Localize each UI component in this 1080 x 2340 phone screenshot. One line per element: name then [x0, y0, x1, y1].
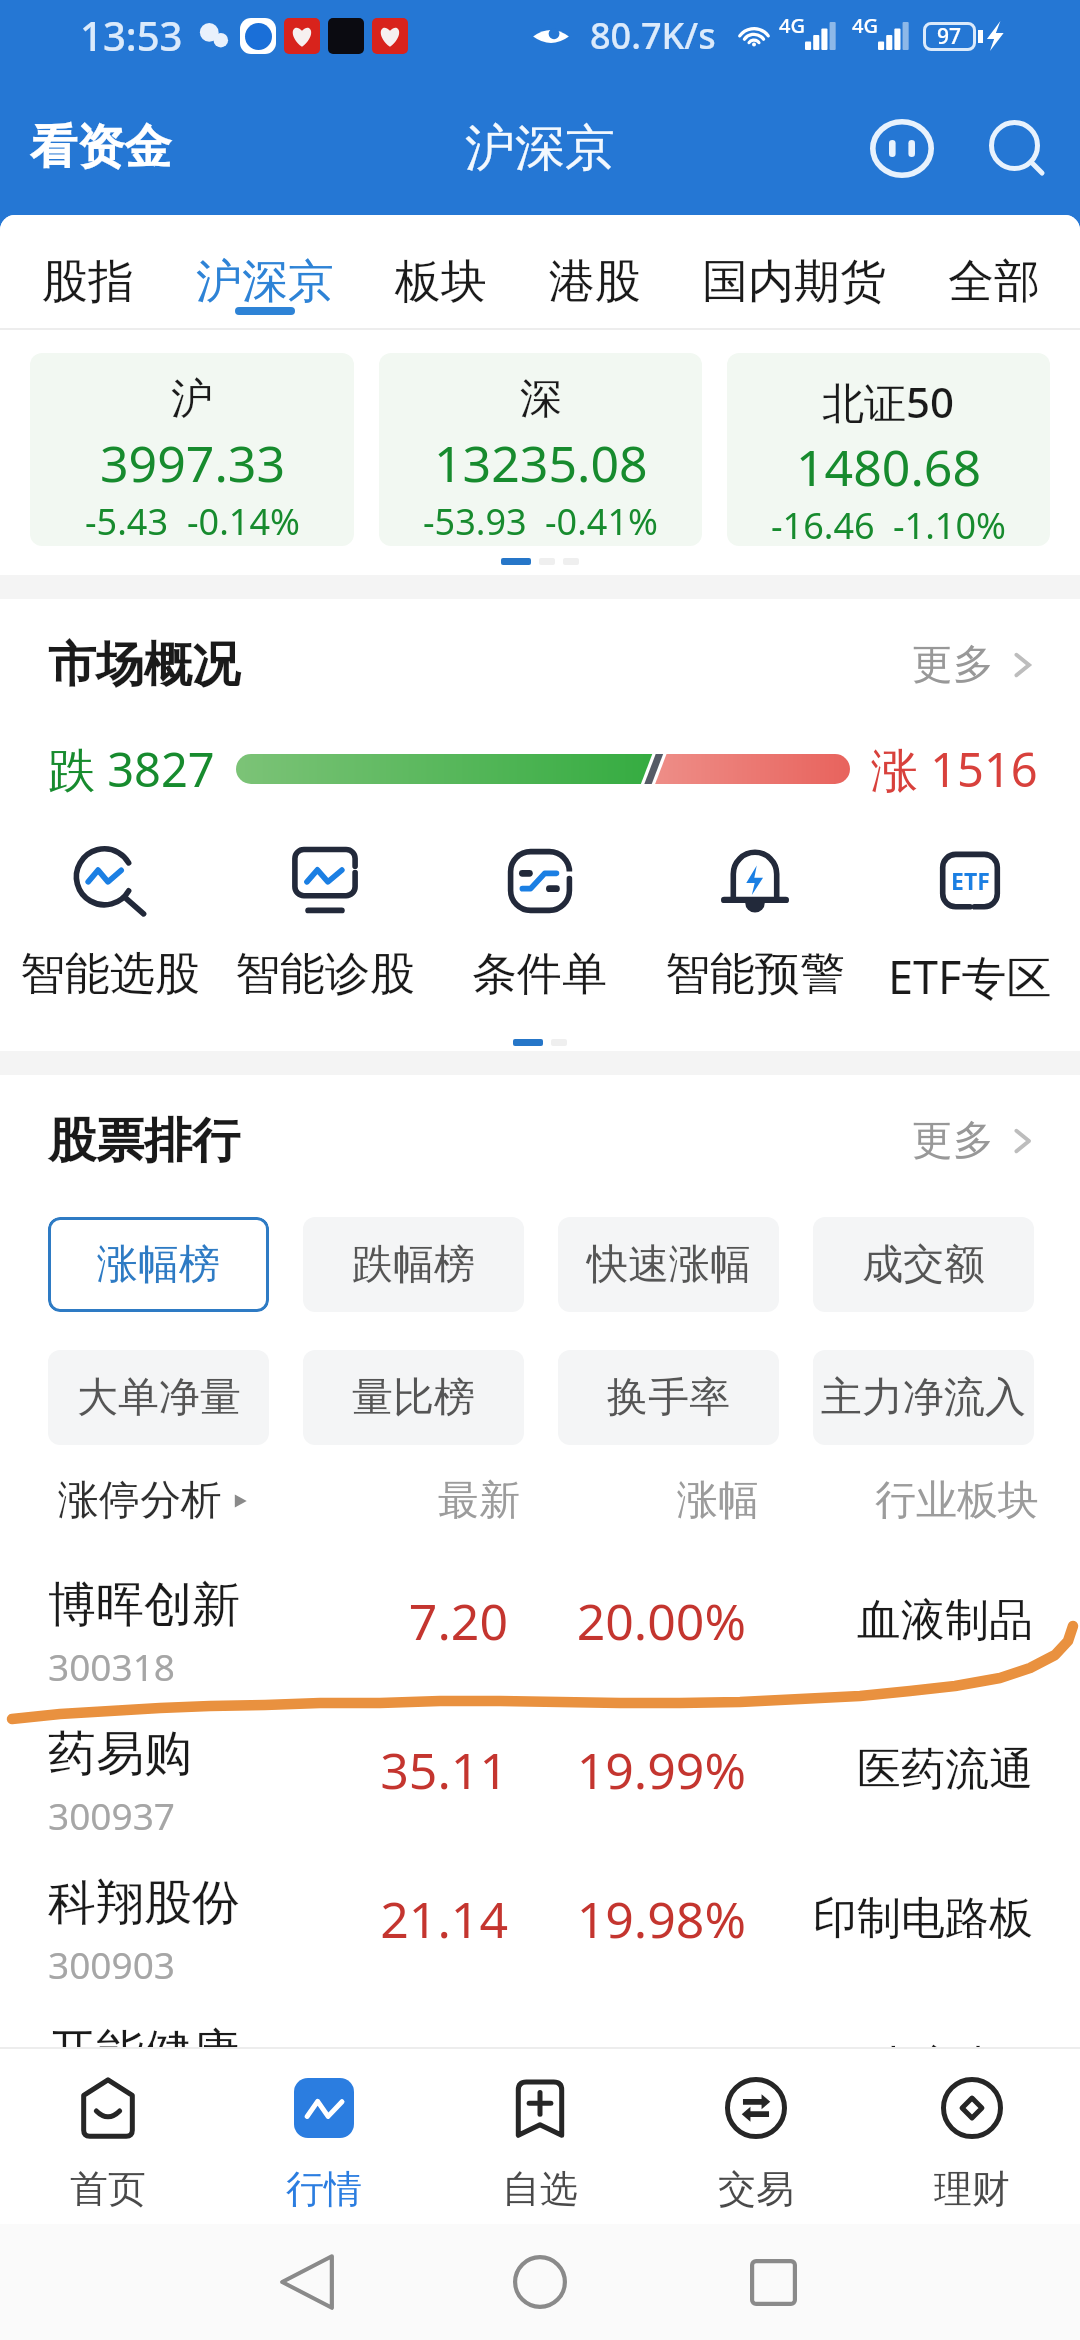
- button[interactable]: 全部: [946, 253, 1042, 319]
- staticText: 4G: [779, 12, 805, 39]
- staticText: 沪深京: [196, 253, 334, 311]
- staticText: 300318: [48, 1641, 175, 1691]
- staticText: 13:53: [80, 8, 183, 62]
- staticText: 智能预警: [665, 946, 845, 1003]
- staticText: 水家电Ⅲ: [746, 2040, 1033, 2095]
- staticText: 13235.08: [434, 429, 648, 497]
- staticText: 涨 1516: [871, 737, 1038, 801]
- button[interactable]: 开能健康: [0, 2005, 1080, 2154]
- button[interactable]: 股指: [40, 253, 136, 319]
- staticText: 更多: [912, 639, 994, 691]
- staticText: 300272: [48, 2088, 175, 2138]
- button[interactable]: 主力净流入: [813, 1350, 1034, 1445]
- button[interactable]: 理财: [864, 2049, 1080, 2213]
- staticText: 智能诊股: [235, 946, 415, 1003]
- button[interactable]: ETF: [862, 846, 1077, 1007]
- staticText: 科翔股份: [48, 1873, 240, 1933]
- staticText: 4G: [852, 12, 878, 39]
- staticText: 涨幅榜: [97, 1239, 220, 1291]
- staticText: 3997.33: [100, 429, 285, 497]
- button[interactable]: 药易购: [0, 1707, 1080, 1856]
- staticText: 智能选股: [20, 946, 200, 1003]
- staticText: 19.96%: [508, 2034, 746, 2102]
- staticText: 大单净量: [77, 1372, 241, 1424]
- staticText: 换手率: [607, 1372, 730, 1424]
- staticText: -0.14%: [187, 497, 300, 546]
- button[interactable]: 涨停分析: [58, 1475, 380, 1527]
- staticText: 交易: [718, 2165, 794, 2213]
- staticText: 最新: [380, 1475, 520, 1527]
- staticText: 北证50: [822, 373, 955, 430]
- staticText: 医药流通: [746, 1742, 1033, 1797]
- staticText: 快速涨幅: [587, 1239, 751, 1291]
- staticText: 量比榜: [352, 1372, 475, 1424]
- button[interactable]: 深: [379, 353, 702, 546]
- staticText: -5.43: [85, 497, 169, 546]
- button[interactable]: 交易: [648, 2049, 864, 2213]
- staticText: 涨停分析: [58, 1475, 222, 1527]
- button[interactable]: 港股: [547, 253, 643, 319]
- button[interactable]: 北证50: [727, 353, 1050, 546]
- staticText: ETF: [951, 865, 990, 896]
- staticText: 深: [520, 373, 562, 426]
- button[interactable]: Assistant: [860, 106, 944, 190]
- staticText: 行业板块: [759, 1475, 1039, 1527]
- staticText: 沪: [171, 373, 213, 426]
- button[interactable]: 行情: [216, 2049, 432, 2213]
- staticText: -53.93: [423, 497, 527, 546]
- staticText: 国内期货: [702, 253, 886, 311]
- button[interactable]: 板块: [393, 253, 489, 319]
- button[interactable]: 换手率: [558, 1350, 779, 1445]
- staticText: 1480.68: [796, 433, 981, 501]
- staticText: 药易购: [48, 1724, 192, 1784]
- staticText: 300903: [48, 1939, 175, 1989]
- staticText: -1.10%: [893, 501, 1006, 546]
- button[interactable]: 智能预警: [647, 846, 862, 1003]
- staticText: 板块: [395, 253, 487, 311]
- button[interactable]: 智能诊股: [217, 846, 432, 1003]
- button[interactable]: 科翔股份: [0, 1856, 1080, 2005]
- staticText: ETF专区: [888, 946, 1052, 1007]
- staticText: 7.20: [370, 1587, 508, 1655]
- button[interactable]: 涨幅榜: [48, 1217, 269, 1312]
- staticText: 跌幅榜: [352, 1239, 475, 1291]
- staticText: 全部: [948, 253, 1040, 311]
- button[interactable]: 沪: [30, 353, 354, 546]
- staticText: 19.98%: [508, 1885, 746, 1953]
- staticText: 成交额: [862, 1239, 985, 1291]
- staticText: 主力净流入: [821, 1372, 1026, 1424]
- button[interactable]: 国内期货: [700, 253, 888, 319]
- button[interactable]: 首页: [0, 2049, 216, 2213]
- button[interactable]: 成交额: [813, 1217, 1034, 1312]
- staticText: 开能健康: [48, 2022, 240, 2082]
- button[interactable]: 快速涨幅: [558, 1217, 779, 1312]
- button[interactable]: Search: [980, 111, 1054, 185]
- staticText: 9.49: [370, 2034, 508, 2102]
- staticText: 港股: [549, 253, 641, 311]
- button[interactable]: Back: [259, 2234, 355, 2330]
- button[interactable]: 看资金: [22, 106, 179, 189]
- staticText: 80.7K/s: [590, 11, 716, 60]
- staticText: 沪深京: [465, 117, 615, 180]
- staticText: -16.46: [771, 501, 875, 546]
- button[interactable]: 沪深京: [194, 253, 336, 319]
- button[interactable]: 更多: [912, 631, 1038, 699]
- button[interactable]: 量比榜: [303, 1350, 524, 1445]
- button[interactable]: 条件单: [432, 846, 647, 1003]
- button[interactable]: 大单净量: [48, 1350, 269, 1445]
- button[interactable]: 博晖创新: [0, 1558, 1080, 1707]
- staticText: 血液制品: [746, 1593, 1033, 1648]
- staticText: 股指: [42, 253, 134, 311]
- button[interactable]: Home: [492, 2234, 588, 2330]
- staticText: 博晖创新: [48, 1575, 240, 1635]
- button[interactable]: 自选: [432, 2049, 648, 2213]
- button[interactable]: 跌幅榜: [303, 1217, 524, 1312]
- button[interactable]: 更多: [912, 1107, 1038, 1175]
- button[interactable]: 智能选股: [3, 846, 217, 1003]
- staticText: 股票排行: [48, 1111, 240, 1171]
- staticText: 理财: [934, 2165, 1010, 2213]
- button[interactable]: Recents: [725, 2234, 821, 2330]
- staticText: -0.41%: [545, 497, 658, 546]
- staticText: 跌 3827: [48, 737, 215, 801]
- staticText: 300937: [48, 1790, 175, 1840]
